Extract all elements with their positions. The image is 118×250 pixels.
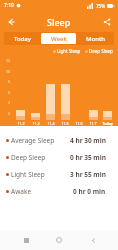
staticText: 0 hr 35 min bbox=[70, 153, 106, 162]
staticText: 11.7 bbox=[89, 121, 97, 126]
staticText: Deep Sleep bbox=[89, 48, 113, 54]
staticText: Light Sleep bbox=[57, 48, 81, 54]
staticText: Deep Sleep bbox=[11, 153, 46, 162]
button[interactable]: Week bbox=[41, 33, 76, 44]
staticText: 12 bbox=[6, 58, 11, 63]
button[interactable]: Recent apps bbox=[18, 232, 34, 248]
button[interactable]: Deep Sleep bbox=[0, 149, 118, 166]
staticText: 4 hr 30 min bbox=[70, 136, 106, 145]
button[interactable]: Average Sleep bbox=[0, 132, 118, 149]
staticText: Month bbox=[86, 35, 105, 43]
button[interactable]: Share bbox=[99, 14, 115, 30]
staticText: 0 hr 0 min bbox=[73, 187, 106, 196]
staticText: Today bbox=[14, 35, 31, 43]
staticText: 11.3 bbox=[32, 121, 40, 126]
staticText: Sleep bbox=[47, 16, 71, 28]
staticText: 4 bbox=[8, 100, 11, 105]
staticText: Average Sleep bbox=[11, 136, 55, 145]
button[interactable]: Awake bbox=[0, 183, 118, 200]
staticText: 11.2 bbox=[17, 121, 25, 126]
staticText: 8 bbox=[8, 79, 11, 84]
staticText: 3 hr 55 min bbox=[70, 170, 106, 179]
staticText: 11.5 bbox=[61, 121, 69, 126]
button[interactable]: Light Sleep bbox=[0, 166, 118, 183]
staticText: Light Sleep bbox=[11, 170, 45, 179]
button[interactable]: Back bbox=[85, 232, 101, 248]
staticText: Awake bbox=[11, 187, 32, 196]
staticText: 6 bbox=[8, 90, 11, 95]
button[interactable]: Back bbox=[3, 14, 19, 30]
button[interactable]: Home bbox=[51, 232, 67, 248]
staticText: 10 bbox=[6, 69, 11, 74]
staticText: Week bbox=[51, 35, 67, 43]
button[interactable]: Month bbox=[78, 33, 113, 44]
staticText: 11.4 bbox=[47, 121, 55, 126]
staticText: 11.6 bbox=[75, 121, 83, 126]
staticText: 2 bbox=[8, 111, 11, 116]
staticText: 7:19 bbox=[4, 2, 14, 9]
staticText: Today bbox=[102, 121, 113, 126]
button[interactable]: Today bbox=[5, 33, 39, 44]
staticText: 75% bbox=[96, 3, 105, 9]
